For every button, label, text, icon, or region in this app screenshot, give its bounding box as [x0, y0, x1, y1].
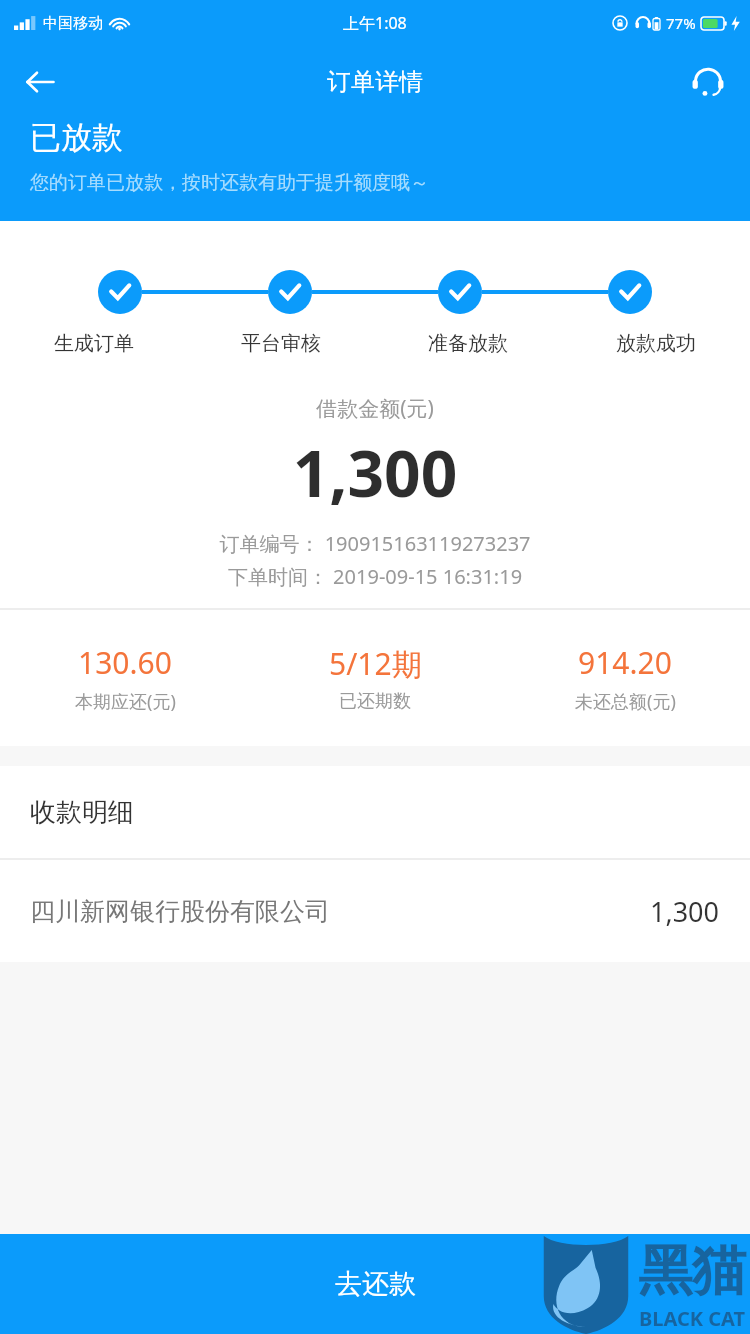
- staticText: 四川新网银行股份有限公司: [30, 896, 650, 927]
- staticText: BLACK CAT: [639, 1305, 746, 1332]
- staticText: 本期应还(元): [75, 689, 176, 714]
- staticText: 订单详情: [327, 67, 423, 97]
- staticText: 已放款: [30, 118, 123, 157]
- staticText: 77%: [666, 13, 696, 33]
- staticText: 去还款: [335, 1267, 416, 1301]
- button[interactable]: Customer service: [680, 54, 736, 110]
- staticText: 订单编号： 190915163119273237: [0, 530, 750, 557]
- staticText: 下单时间： 2019-09-15 16:31:19: [0, 563, 750, 590]
- staticText: 生成订单: [54, 331, 134, 356]
- staticText: 已还期数: [339, 690, 411, 713]
- staticText: 平台审核: [241, 331, 321, 356]
- staticText: 收款明细: [30, 796, 134, 829]
- staticText: 借款金额(元): [0, 394, 750, 423]
- staticText: 130.60: [78, 642, 172, 683]
- staticText: 上午1:08: [343, 12, 407, 34]
- staticText: 中国移动: [43, 14, 103, 33]
- staticText: 您的订单已放款，按时还款有助于提升额度哦～: [30, 171, 429, 195]
- staticText: 914.20: [578, 642, 672, 683]
- staticText: 1,300: [0, 429, 750, 516]
- staticText: 黑猫: [638, 1237, 746, 1305]
- button[interactable]: Back: [12, 54, 68, 110]
- staticText: 准备放款: [428, 331, 508, 356]
- button[interactable]: 四川新网银行股份有限公司: [0, 860, 750, 962]
- staticText: 5/12期: [329, 643, 422, 684]
- staticText: 未还总额(元): [575, 689, 676, 714]
- button[interactable]: 去还款: [0, 1234, 750, 1334]
- staticText: 1,300: [650, 893, 720, 930]
- staticText: 放款成功: [616, 331, 696, 356]
